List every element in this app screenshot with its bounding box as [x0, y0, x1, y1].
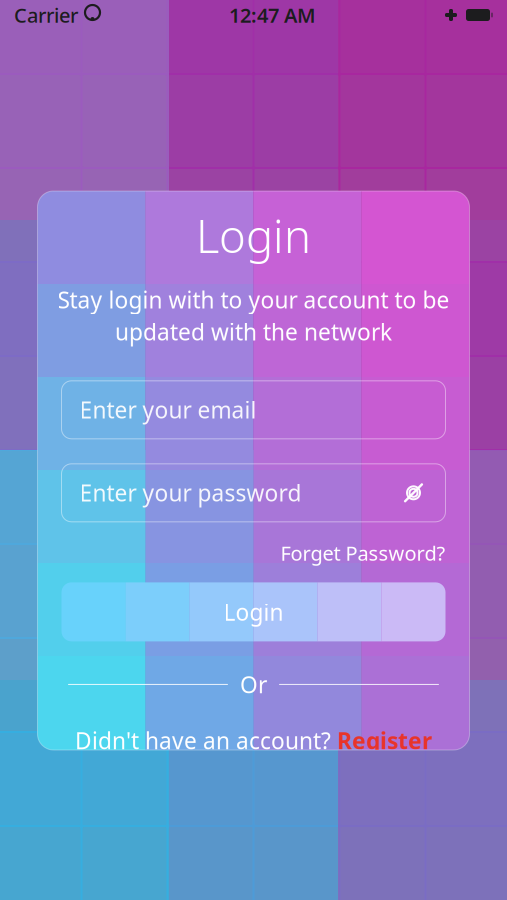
staticText: Stay login with to your account to be [57, 285, 449, 315]
staticText: Or [240, 669, 267, 699]
staticText: Didn't have an account? [75, 725, 331, 756]
button[interactable]: Enter your email [61, 381, 445, 439]
staticText: Carrier [14, 2, 78, 28]
button[interactable]: Didn't have an account? [75, 725, 432, 756]
staticText: 12:47 AM [229, 2, 316, 28]
staticText [78, 0, 84, 30]
button[interactable]: Login [61, 582, 445, 641]
staticText: Enter your email [79, 395, 256, 425]
staticText: updated with the network [115, 317, 392, 347]
staticText: Login [223, 597, 283, 627]
staticText: Login [196, 205, 311, 266]
staticText: Forget Password? [280, 540, 445, 566]
staticText: Register [337, 725, 432, 756]
staticText: Enter your password [79, 478, 301, 508]
button[interactable]: Forget Password? [280, 540, 445, 566]
button[interactable]: Enter your password [61, 464, 445, 522]
